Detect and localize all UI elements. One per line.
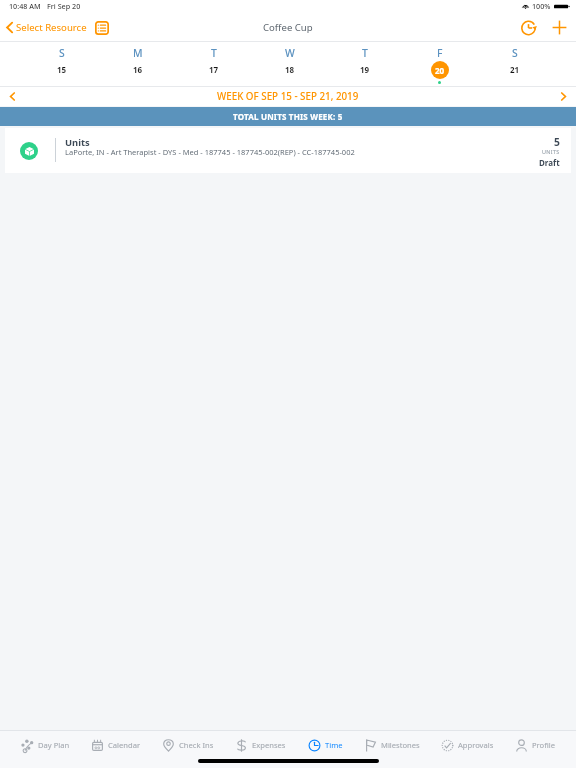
staticText: 16	[133, 64, 143, 75]
button[interactable]: Calendar	[91, 733, 141, 757]
button[interactable]: S	[24, 41, 100, 86]
staticText: S	[59, 46, 65, 60]
button[interactable]: Approvals	[441, 733, 494, 757]
button[interactable]: Day Plan	[21, 733, 70, 757]
staticText: 5	[554, 135, 560, 149]
staticText: Draft	[539, 157, 560, 168]
staticText: Coffee Cup	[263, 21, 313, 34]
staticText: Check Ins	[179, 740, 214, 750]
staticText: Expenses	[252, 740, 286, 750]
button[interactable]: Expenses	[235, 733, 286, 757]
button[interactable]: List view	[95, 21, 109, 35]
button[interactable]: Select Resource	[0, 15, 91, 40]
staticText: 19	[360, 64, 370, 75]
staticText: 18	[285, 64, 295, 75]
button[interactable]: M	[100, 41, 176, 86]
staticText: Time	[325, 740, 343, 750]
staticText: S	[512, 46, 518, 60]
staticText: 100%	[532, 1, 551, 11]
staticText: 21	[510, 64, 520, 75]
button[interactable]: Previous week	[0, 86, 25, 106]
staticText: F	[437, 46, 443, 60]
button[interactable]: Add	[552, 20, 567, 35]
button[interactable]: Time	[308, 733, 343, 757]
button[interactable]: S	[477, 41, 552, 86]
button[interactable]: Next week	[551, 86, 576, 106]
button[interactable]: Profile	[515, 733, 555, 757]
staticText: Approvals	[458, 740, 494, 750]
staticText: LaPorte, IN - Art Therapist - DYS - Med …	[65, 147, 355, 157]
staticText: Select Resource	[16, 21, 87, 34]
staticText: WEEK OF SEP 15 - SEP 21, 2019	[217, 90, 359, 103]
button[interactable]: Check Ins	[162, 733, 214, 757]
staticText: Units	[65, 136, 90, 149]
staticText: 17	[209, 64, 219, 75]
button[interactable]: Units	[5, 128, 571, 173]
button[interactable]: Milestones	[364, 733, 420, 757]
staticText: Milestones	[381, 740, 420, 750]
staticText: W	[285, 46, 295, 60]
staticText: 10:48 AM	[9, 1, 41, 11]
staticText: TOTAL UNITS THIS WEEK: 5	[233, 111, 343, 122]
staticText: M	[133, 46, 143, 60]
staticText: Day Plan	[38, 740, 70, 750]
button[interactable]: History	[521, 21, 536, 35]
staticText: Profile	[532, 740, 555, 750]
button[interactable]: F	[402, 41, 477, 86]
staticText: UNITS	[542, 148, 560, 155]
staticText: T	[362, 46, 368, 60]
staticText: 15	[57, 64, 67, 75]
staticText: Fri Sep 20	[47, 1, 81, 11]
button[interactable]: T	[176, 41, 252, 86]
staticText: T	[211, 46, 217, 60]
staticText: Calendar	[108, 740, 141, 750]
button[interactable]: T	[327, 41, 402, 86]
button[interactable]: W	[252, 41, 327, 86]
staticText: 20	[435, 65, 445, 76]
